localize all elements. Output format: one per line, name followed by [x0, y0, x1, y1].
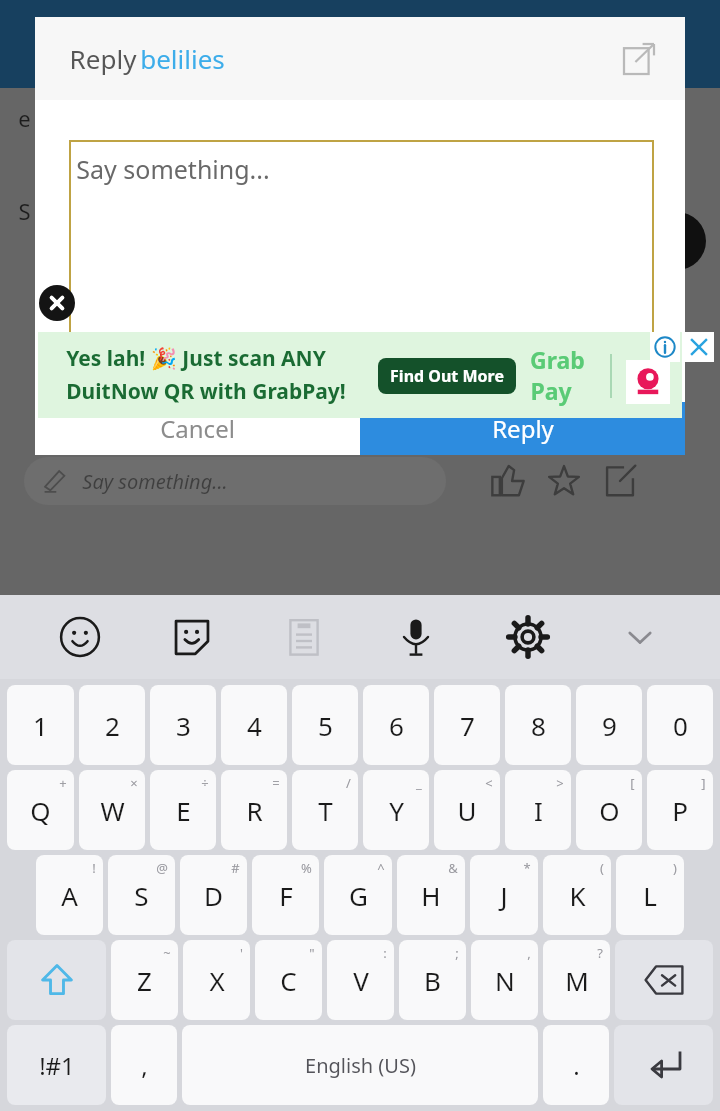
button[interactable]: <	[434, 770, 500, 850]
staticText: Grab	[530, 344, 585, 375]
button[interactable]: Say something...	[69, 140, 654, 335]
button[interactable]: ~	[111, 940, 178, 1020]
staticText: *	[523, 859, 531, 877]
button[interactable]: 9	[576, 685, 642, 765]
button[interactable]: Reply	[360, 402, 685, 455]
button[interactable]: )	[616, 855, 684, 935]
button[interactable]: =	[221, 770, 287, 850]
button[interactable]: [	[576, 770, 642, 850]
staticText: 9	[602, 708, 617, 743]
button[interactable]: "	[255, 940, 322, 1020]
button[interactable]: 6	[363, 685, 429, 765]
staticText: E	[176, 793, 191, 828]
button[interactable]: Say something...	[24, 457, 446, 505]
button[interactable]: %	[252, 855, 319, 935]
staticText: .	[573, 1049, 580, 1082]
button[interactable]: _	[363, 770, 429, 850]
button[interactable]: 2	[79, 685, 145, 765]
staticText: Q	[30, 793, 51, 828]
button[interactable]: Like	[480, 457, 536, 505]
button[interactable]: 7	[434, 685, 500, 765]
staticText: '	[240, 944, 243, 962]
staticText: ]	[701, 774, 706, 792]
staticText: 0	[673, 708, 688, 743]
button[interactable]: 4	[221, 685, 287, 765]
staticText: ~	[163, 944, 171, 962]
button[interactable]: ×	[79, 770, 145, 850]
button[interactable]: /	[292, 770, 358, 850]
button[interactable]: ?	[543, 940, 610, 1020]
staticText: @	[156, 859, 168, 877]
staticText: Find Out More	[390, 365, 504, 387]
button[interactable]: 8	[505, 685, 571, 765]
staticText: U	[457, 793, 477, 828]
button[interactable]: !#1	[7, 1025, 106, 1105]
button[interactable]: !	[36, 855, 103, 935]
button[interactable]: '	[183, 940, 250, 1020]
button[interactable]: ^	[324, 855, 392, 935]
button[interactable]: ]	[647, 770, 713, 850]
button[interactable]: @	[108, 855, 175, 935]
staticText: [	[630, 774, 635, 792]
button[interactable]: Open in new window	[615, 35, 663, 83]
button[interactable]: 1	[7, 685, 74, 765]
button[interactable]: ÷	[150, 770, 216, 850]
button[interactable]: 5	[292, 685, 358, 765]
staticText: T	[318, 793, 333, 828]
button[interactable]: +	[7, 770, 74, 850]
button[interactable]: Shift	[7, 940, 106, 1020]
staticText: Say something...	[76, 152, 270, 186]
button[interactable]: Close ad	[684, 332, 714, 362]
staticText: (	[600, 859, 604, 877]
staticText: 7	[460, 708, 475, 743]
staticText: K	[569, 878, 586, 913]
button[interactable]: Close ad	[39, 285, 75, 321]
button[interactable]: Backspace	[615, 940, 713, 1020]
button[interactable]: 0	[647, 685, 713, 765]
button[interactable]: Share	[592, 457, 648, 505]
staticText: D	[204, 878, 223, 913]
staticText: F	[279, 878, 293, 913]
button[interactable]: Stickers	[136, 595, 248, 679]
button[interactable]: Clipboard	[248, 595, 360, 679]
staticText: A	[61, 878, 78, 913]
button[interactable]: #	[180, 855, 247, 935]
button[interactable]: Enter	[614, 1025, 713, 1105]
button[interactable]: Find Out More	[378, 358, 516, 394]
staticText: 4	[247, 708, 262, 743]
button[interactable]: 3	[150, 685, 216, 765]
staticText: V	[353, 963, 369, 998]
button[interactable]: Hide keyboard	[584, 595, 696, 679]
staticText: N	[495, 963, 515, 998]
button[interactable]: Emoji	[24, 595, 136, 679]
button[interactable]: :	[327, 940, 394, 1020]
staticText: 8	[531, 708, 546, 743]
staticText: DuitNow QR with GrabPay!	[66, 377, 346, 406]
staticText: 1	[33, 708, 48, 743]
button[interactable]: Ad information	[650, 332, 680, 362]
button[interactable]: >	[505, 770, 571, 850]
staticText: I	[534, 793, 543, 828]
button[interactable]: ,	[471, 940, 538, 1020]
staticText: English (US)	[305, 1052, 416, 1079]
button[interactable]: ,	[111, 1025, 177, 1105]
button[interactable]: English (US)	[182, 1025, 538, 1105]
button[interactable]: Settings	[472, 595, 584, 679]
button[interactable]: Voice input	[360, 595, 472, 679]
button[interactable]: Favorite	[536, 457, 592, 505]
button[interactable]: ;	[399, 940, 466, 1020]
staticText: %	[301, 859, 312, 877]
staticText: L	[643, 878, 657, 913]
staticText: Say something...	[82, 468, 228, 495]
button[interactable]: Cancel	[35, 402, 360, 455]
staticText: S	[134, 878, 149, 913]
staticText: "	[309, 944, 315, 962]
button[interactable]: *	[470, 855, 538, 935]
button[interactable]: (	[543, 855, 611, 935]
button[interactable]: .	[543, 1025, 609, 1105]
staticText: Reply	[492, 412, 554, 445]
staticText: Reply	[66, 41, 140, 76]
staticText: :	[383, 944, 387, 962]
staticText: W	[100, 793, 125, 828]
button[interactable]: &	[397, 855, 465, 935]
